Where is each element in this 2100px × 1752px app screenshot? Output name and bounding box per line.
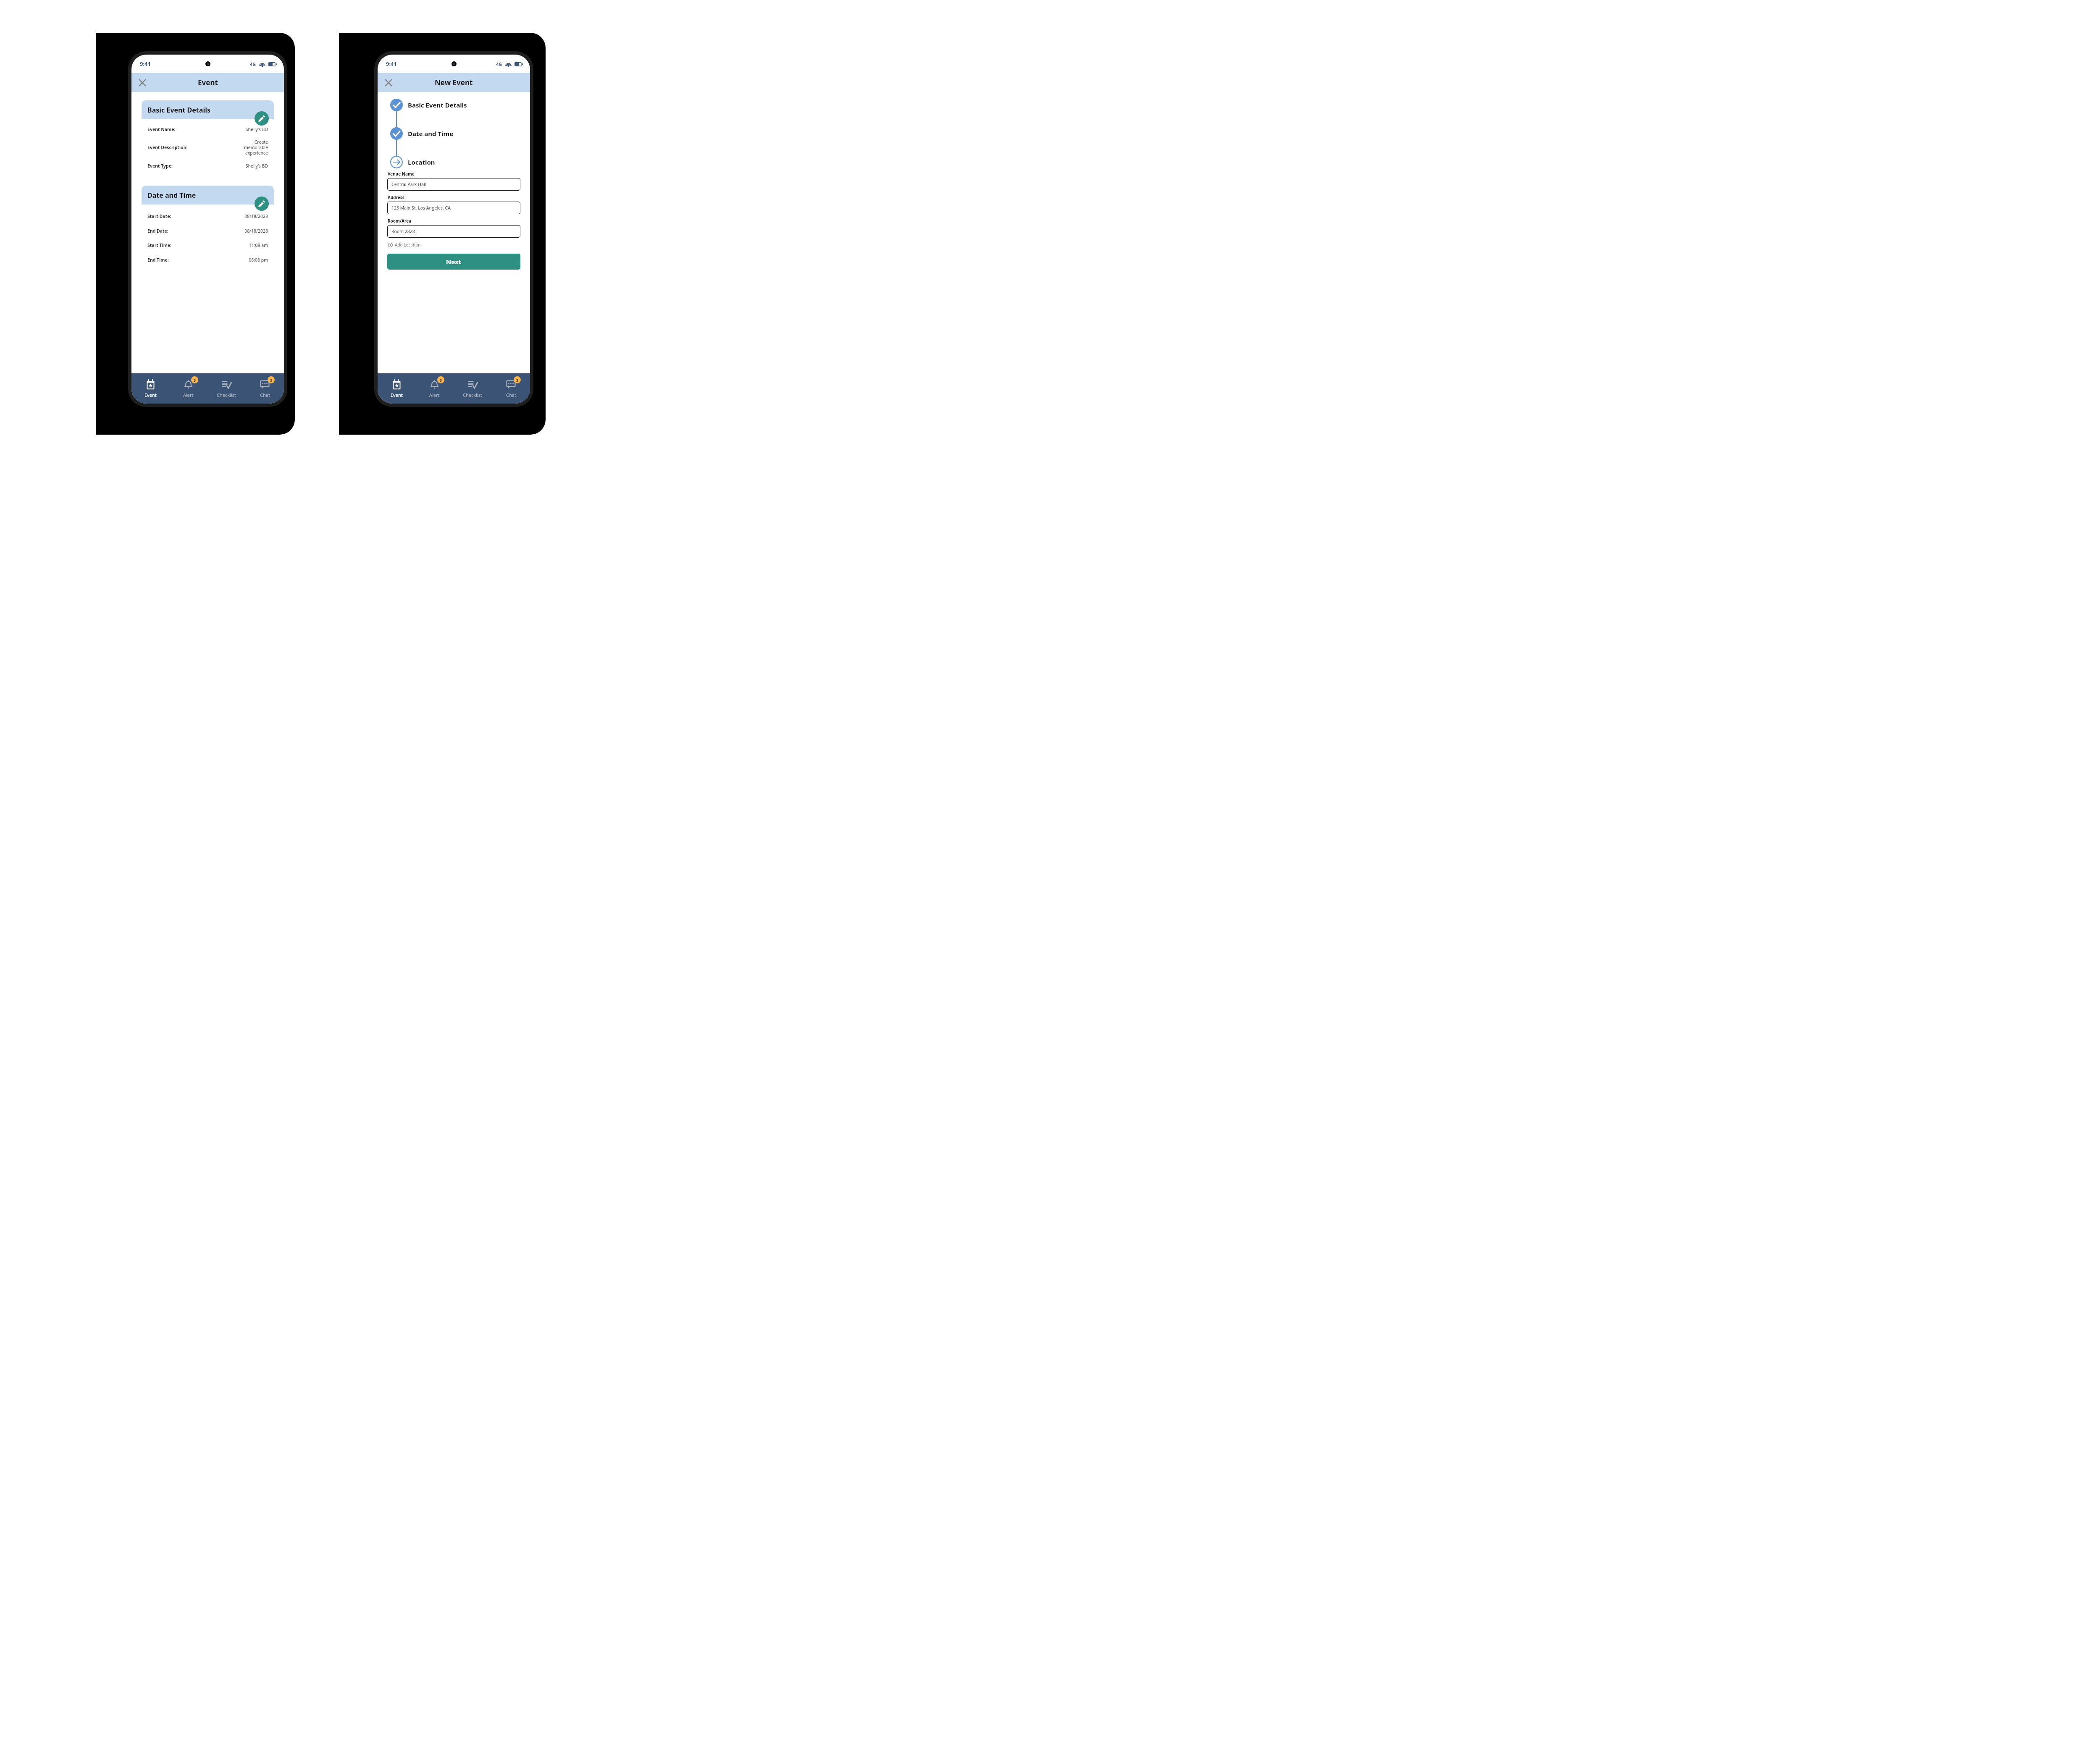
- staticText: Start Date:: [147, 213, 171, 219]
- button[interactable]: Edit: [255, 197, 269, 211]
- staticText: New Event: [435, 78, 473, 87]
- staticText: Date and Time: [408, 129, 454, 138]
- staticText: Shelly’s BD: [245, 163, 268, 169]
- staticText: Next: [446, 257, 462, 266]
- staticText: 08/18/2028: [244, 228, 268, 234]
- staticText: Event: [144, 392, 157, 398]
- staticText: Create memorable experience: [244, 139, 268, 156]
- button[interactable]: 3: [415, 373, 454, 404]
- staticText: 3: [194, 378, 196, 383]
- staticText: Room 2828: [391, 228, 415, 234]
- button[interactable]: Checklist: [207, 373, 246, 404]
- button[interactable]: 3: [169, 373, 207, 404]
- staticText: 123 Main St, Los Angeles, CA: [391, 205, 451, 211]
- staticText: Date and Time: [147, 191, 196, 200]
- staticText: 4G: [250, 61, 256, 67]
- staticText: Add Location: [395, 242, 421, 248]
- staticText: 08:08 pm: [249, 257, 268, 263]
- button[interactable]: Add Location: [388, 242, 421, 248]
- staticText: Venue Name: [388, 171, 415, 177]
- button[interactable]: Basic Event Details: [142, 100, 274, 176]
- staticText: Event Description:: [147, 144, 188, 150]
- button[interactable]: Event: [378, 373, 415, 404]
- staticText: Checklist: [463, 392, 483, 398]
- staticText: Event: [391, 392, 403, 398]
- staticText: Basic Event Details: [147, 105, 210, 115]
- staticText: Central Park Hall: [391, 181, 426, 187]
- staticText: Chat: [506, 392, 516, 398]
- staticText: End Time:: [147, 257, 169, 263]
- staticText: 3: [516, 378, 519, 383]
- staticText: 3: [440, 378, 442, 383]
- button[interactable]: Edit: [255, 111, 269, 126]
- staticText: 9:41: [386, 60, 397, 68]
- button[interactable]: Location: [387, 156, 520, 168]
- staticText: Event Type:: [147, 163, 173, 169]
- button[interactable]: Date and Time: [387, 127, 520, 140]
- button[interactable]: Close: [381, 75, 396, 90]
- staticText: Room/Area: [388, 218, 412, 224]
- staticText: Shelly’s BD: [245, 126, 268, 132]
- staticText: Location: [408, 158, 435, 166]
- staticText: Event Name:: [147, 126, 176, 132]
- staticText: Checklist: [217, 392, 236, 398]
- button[interactable]: 3: [246, 373, 284, 404]
- staticText: Basic Event Details: [408, 101, 467, 109]
- button[interactable]: Event: [131, 373, 169, 404]
- button[interactable]: Close: [135, 75, 150, 90]
- staticText: Start Time:: [147, 242, 172, 248]
- button[interactable]: Checklist: [454, 373, 492, 404]
- button[interactable]: 123 Main St, Los Angeles, CA: [388, 202, 520, 214]
- staticText: Alert: [429, 392, 440, 398]
- button[interactable]: 3: [492, 373, 530, 404]
- button[interactable]: Central Park Hall: [388, 178, 520, 190]
- staticText: 11:08 am: [249, 242, 268, 248]
- staticText: 08/18/2028: [244, 213, 268, 219]
- staticText: 9:41: [140, 60, 151, 68]
- staticText: Address: [388, 194, 404, 200]
- staticText: Event: [198, 78, 218, 87]
- button[interactable]: Date and Time: [142, 186, 274, 272]
- staticText: End Date:: [147, 228, 168, 234]
- button[interactable]: Room 2828: [388, 226, 520, 237]
- button[interactable]: Basic Event Details: [387, 99, 520, 111]
- button[interactable]: Next: [387, 254, 520, 270]
- staticText: Chat: [260, 392, 270, 398]
- staticText: 3: [270, 378, 273, 383]
- staticText: Alert: [183, 392, 194, 398]
- staticText: 4G: [496, 61, 502, 67]
